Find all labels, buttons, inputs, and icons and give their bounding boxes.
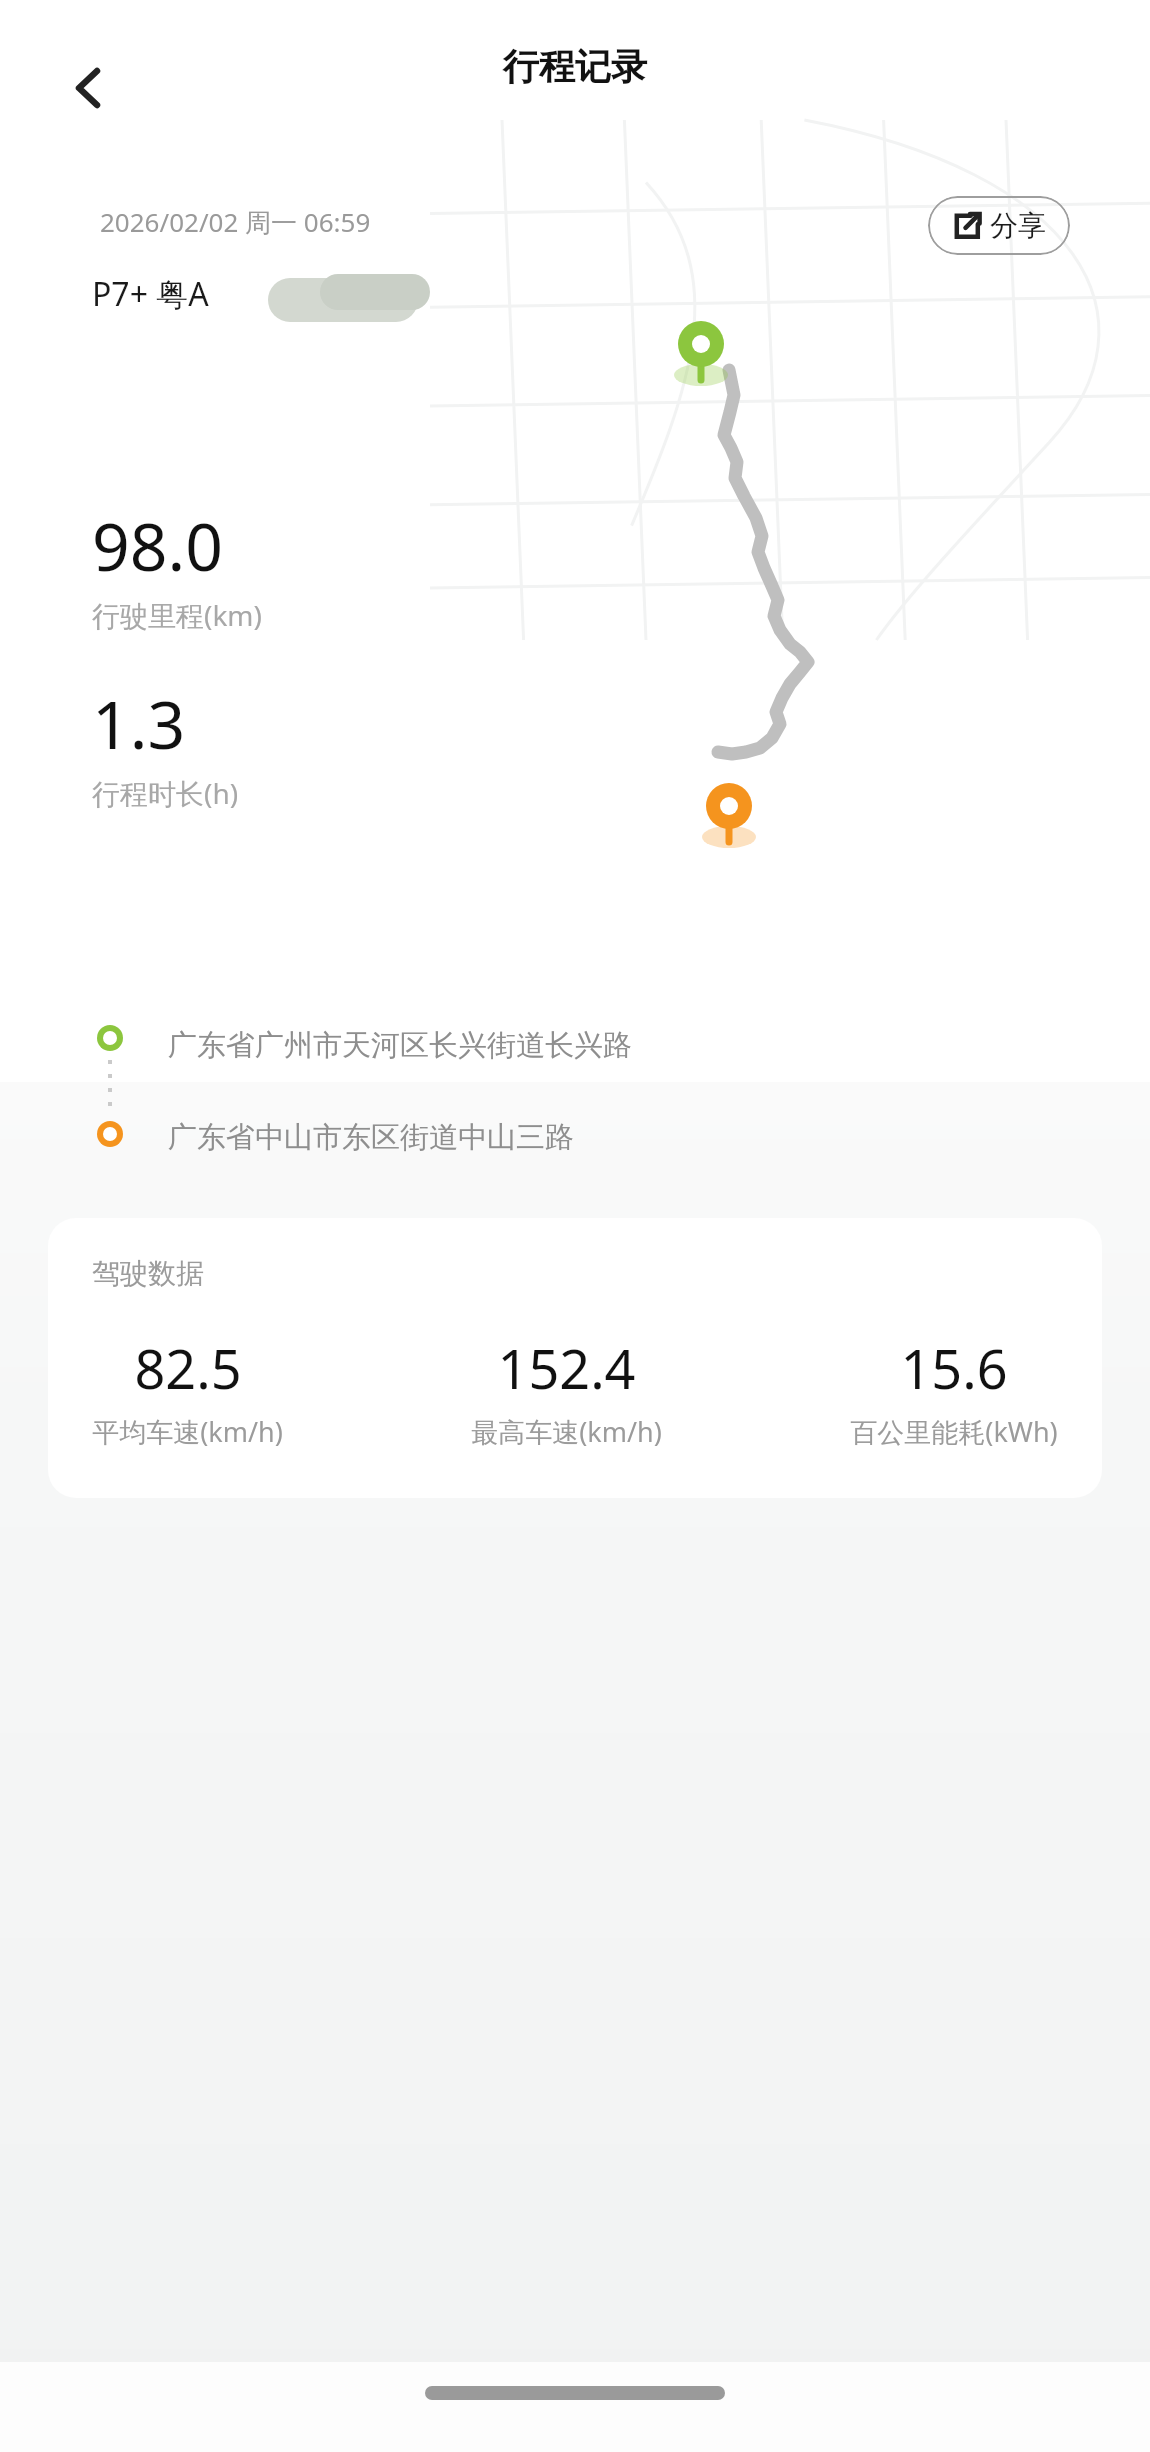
staticText: 分享 bbox=[990, 208, 1046, 243]
staticText: 82.5 bbox=[134, 1331, 242, 1405]
staticText: 行程记录 bbox=[503, 44, 647, 89]
staticText: 行驶里程(km) bbox=[92, 596, 262, 634]
staticText: 驾驶数据 bbox=[92, 1256, 204, 1291]
staticText: 行程时长(h) bbox=[92, 774, 239, 812]
button[interactable]: 返回 bbox=[38, 38, 138, 138]
staticText: 最高车速(km/h) bbox=[471, 1413, 662, 1450]
button[interactable]: 广东省中山市东区街道中山三路 bbox=[0, 1106, 1150, 1168]
button[interactable]: 广东省广州市天河区长兴街道长兴路 bbox=[0, 1014, 1150, 1076]
staticText: 广东省中山市东区街道中山三路 bbox=[168, 1119, 574, 1156]
staticText: 广东省广州市天河区长兴街道长兴路 bbox=[168, 1027, 632, 1064]
staticText: 152.4 bbox=[497, 1331, 636, 1405]
button[interactable]: 分享 bbox=[928, 196, 1070, 255]
staticText: 15.6 bbox=[900, 1331, 1008, 1405]
staticText: 2026/02/02 周一 06:59 bbox=[100, 204, 371, 240]
staticText: P7+ 粤A bbox=[92, 272, 209, 316]
staticText: 平均车速(km/h) bbox=[92, 1413, 283, 1450]
button[interactable]: 驾驶数据 bbox=[48, 1218, 1102, 1498]
staticText: 1.3 bbox=[92, 678, 186, 768]
staticText: 98.0 bbox=[92, 500, 223, 590]
staticText: 百公里能耗(kWh) bbox=[850, 1413, 1058, 1450]
